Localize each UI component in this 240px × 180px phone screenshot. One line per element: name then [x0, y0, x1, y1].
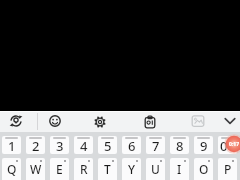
staticText: 1 [8, 137, 16, 154]
staticText: P [224, 161, 232, 177]
staticText: 8 [176, 137, 184, 154]
button[interactable]: O [194, 158, 213, 180]
button[interactable] [190, 113, 206, 129]
button[interactable] [92, 114, 108, 130]
staticText: R [80, 161, 88, 177]
staticText: T [104, 161, 111, 177]
button[interactable]: Q [2, 158, 21, 180]
button[interactable] [222, 113, 238, 129]
button[interactable]: Y [122, 158, 141, 180]
staticText: O [199, 161, 209, 177]
staticText: 6 [128, 137, 136, 154]
button[interactable]: T [98, 158, 117, 180]
staticText: W [30, 161, 42, 177]
staticText: Y [128, 161, 136, 177]
button[interactable]: E [50, 158, 69, 180]
staticText: 0:17 [229, 141, 239, 148]
button[interactable]: 3 [50, 136, 69, 154]
staticText: 9 [200, 137, 208, 154]
button[interactable]: 1 [2, 136, 21, 154]
staticText: 7 [152, 137, 160, 154]
button[interactable]: I [170, 158, 189, 180]
staticText: 4 [80, 137, 88, 154]
staticText: 3 [56, 137, 64, 154]
button[interactable]: U [146, 158, 165, 180]
button[interactable]: 6 [122, 136, 141, 154]
button[interactable] [142, 114, 158, 130]
button[interactable]: 4 [74, 136, 93, 154]
button[interactable] [8, 113, 24, 129]
button[interactable]: 7 [146, 136, 165, 154]
staticText: U [151, 161, 160, 177]
button[interactable] [47, 113, 63, 129]
staticText: 0 [220, 137, 228, 154]
button[interactable]: 0:17 [224, 134, 240, 154]
staticText: I [177, 161, 182, 177]
button[interactable]: 2 [26, 136, 45, 154]
staticText: E [56, 161, 63, 177]
button[interactable]: 9 [194, 136, 213, 154]
staticText: Q [7, 161, 17, 177]
button[interactable]: 8 [170, 136, 189, 154]
button[interactable]: 5 [98, 136, 117, 154]
button[interactable]: W [26, 158, 45, 180]
staticText: 2 [32, 137, 40, 154]
button[interactable]: P [218, 158, 237, 180]
button[interactable]: 0 [218, 136, 237, 154]
button[interactable]: R [74, 158, 93, 180]
staticText: 5 [104, 137, 112, 154]
